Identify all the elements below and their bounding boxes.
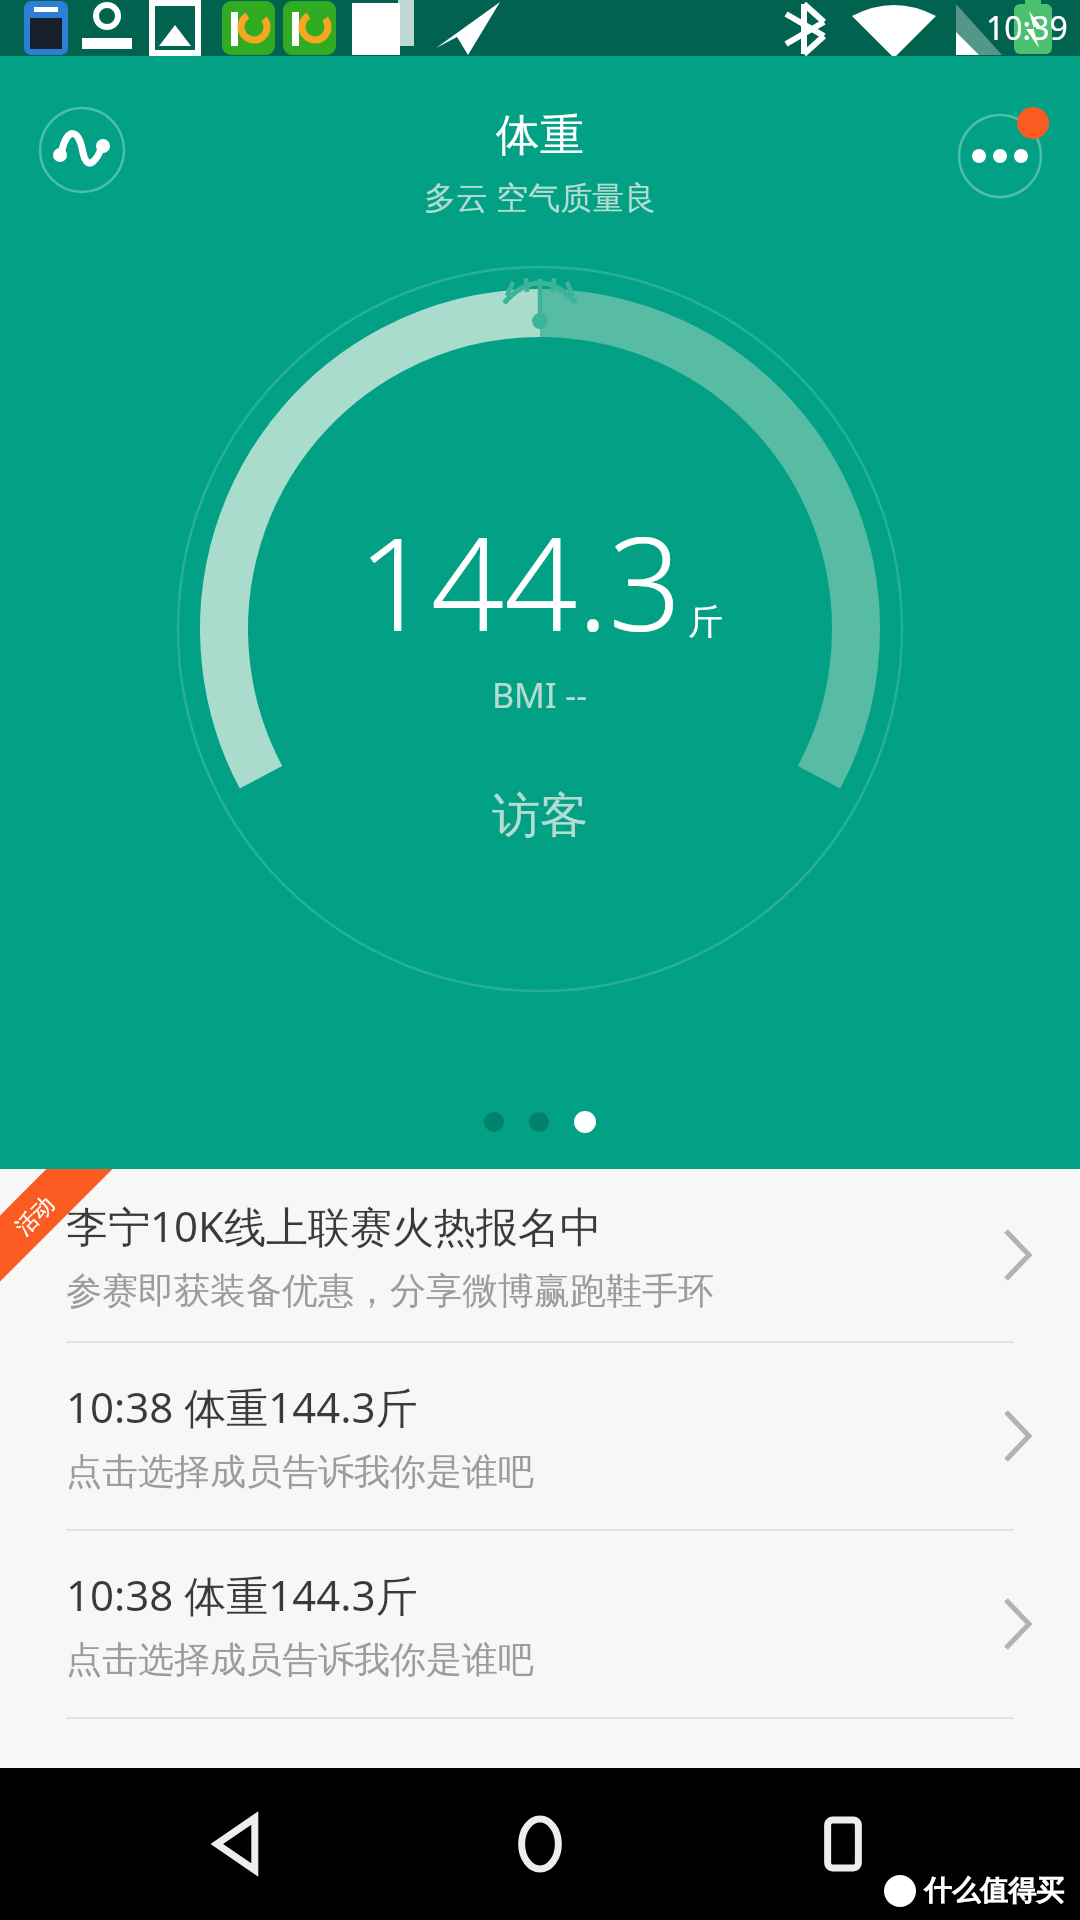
- button[interactable]: 访客: [492, 786, 588, 846]
- staticText: 体重: [496, 108, 584, 163]
- staticText: 活动: [9, 1190, 60, 1241]
- staticText: 10:38 体重144.3斤: [66, 1566, 418, 1623]
- staticText: 10:38 体重144.3斤: [66, 1378, 418, 1435]
- staticText: BMI --: [492, 672, 588, 718]
- button[interactable]: [484, 1112, 504, 1132]
- staticText: 多云 空气质量良: [424, 175, 657, 219]
- staticText: 点击选择成员告诉我你是谁吧: [66, 1449, 534, 1494]
- staticText: 144.3: [358, 494, 682, 668]
- button[interactable]: Back: [173, 1779, 303, 1909]
- button[interactable]: Trends: [38, 106, 126, 194]
- button[interactable]: Recents: [778, 1779, 908, 1909]
- button[interactable]: 10:38 体重144.3斤: [0, 1343, 1080, 1529]
- button[interactable]: 李宁10K线上联赛火热报名中: [0, 1169, 1080, 1341]
- button[interactable]: Home: [475, 1779, 605, 1909]
- staticText: 参赛即获装备优惠，分享微博赢跑鞋手环: [66, 1268, 714, 1313]
- staticText: 什么值得买: [924, 1873, 1064, 1908]
- staticText: 斤: [688, 600, 723, 644]
- button[interactable]: More options: [948, 98, 1052, 202]
- button[interactable]: 10:38 体重144.3斤: [0, 1531, 1080, 1717]
- staticText: 点击选择成员告诉我你是谁吧: [66, 1637, 534, 1682]
- staticText: 李宁10K线上联赛火热报名中: [66, 1197, 603, 1254]
- staticText: 10:39: [986, 6, 1068, 50]
- button[interactable]: [529, 1112, 549, 1132]
- button[interactable]: [574, 1111, 596, 1133]
